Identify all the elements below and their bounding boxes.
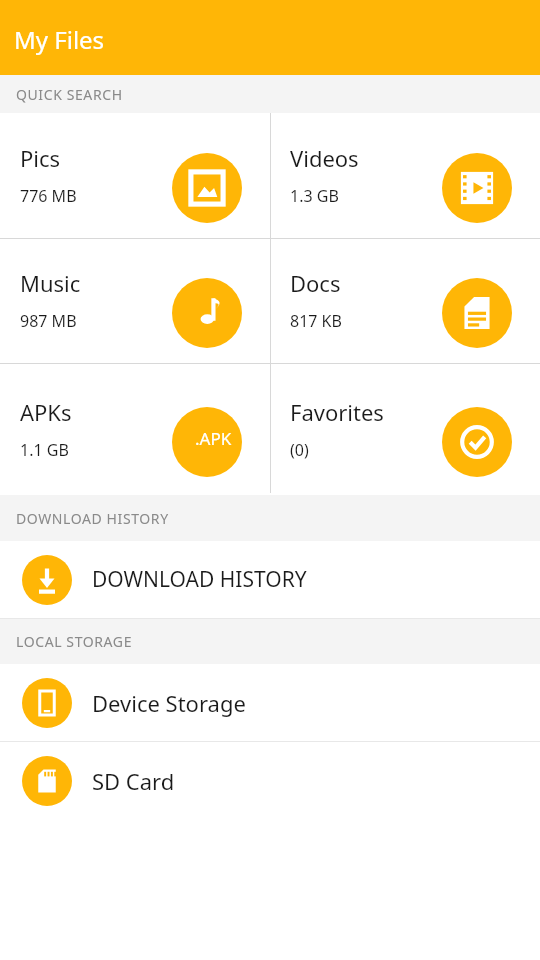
staticText: Docs <box>290 268 341 298</box>
staticText: Favorites <box>290 397 384 427</box>
button[interactable]: Docs <box>270 239 540 363</box>
staticText: SD Card <box>92 766 175 796</box>
staticText: LOCAL STORAGE <box>16 632 133 651</box>
staticText: 987 MB <box>20 310 77 332</box>
button[interactable]: Download history <box>0 541 540 618</box>
staticText: 1.3 GB <box>290 185 339 207</box>
other: Download history <box>22 555 72 605</box>
other: SD card <box>22 756 72 806</box>
button[interactable]: Favorites <box>270 364 540 495</box>
other: Device storage <box>22 678 72 728</box>
staticText: Videos <box>290 143 359 173</box>
staticText: (0) <box>290 439 309 461</box>
staticText: DOWNLOAD HISTORY <box>16 509 169 528</box>
staticText: APKs <box>20 397 72 427</box>
button[interactable]: Videos <box>270 113 540 238</box>
button[interactable]: Pics <box>0 113 270 238</box>
staticText: 817 KB <box>290 310 342 332</box>
staticText: QUICK SEARCH <box>16 85 123 104</box>
button[interactable]: Music <box>0 239 270 363</box>
button[interactable]: SD card <box>0 742 540 819</box>
staticText: Music <box>20 268 81 298</box>
staticText: 776 MB <box>20 185 77 207</box>
staticText: Device Storage <box>92 688 246 718</box>
button[interactable]: Device storage <box>0 664 540 741</box>
staticText: My Files <box>14 23 105 56</box>
staticText: Pics <box>20 143 61 173</box>
staticText: 1.1 GB <box>20 439 69 461</box>
staticText: DOWNLOAD HISTORY <box>92 565 307 594</box>
button[interactable]: APKs <box>0 364 270 495</box>
staticText: .APK <box>195 427 232 450</box>
